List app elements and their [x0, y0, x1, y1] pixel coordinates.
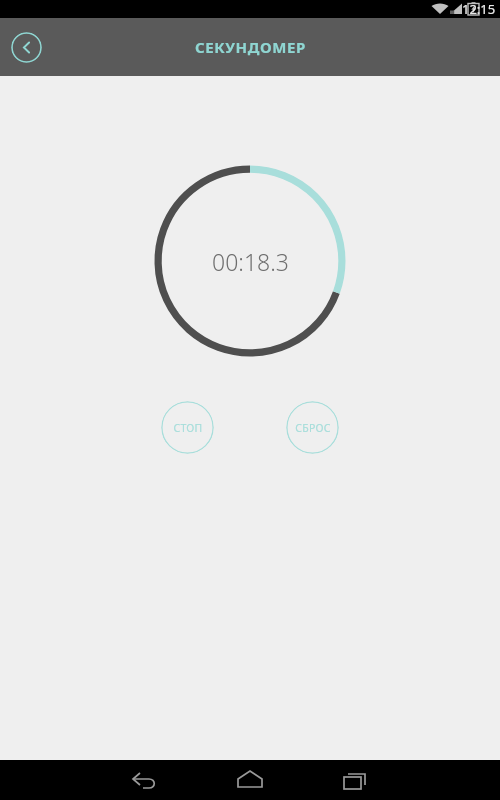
button[interactable]: Home [225, 760, 275, 800]
staticText: СБРОС [295, 421, 331, 435]
button[interactable]: Back [120, 760, 170, 800]
staticText: 00:18.3 [212, 246, 289, 277]
button[interactable]: Recent apps [330, 760, 380, 800]
staticText: 12:15 [462, 0, 496, 18]
staticText: СЕКУНДОМЕР [195, 37, 306, 57]
button[interactable]: СБРОС [286, 401, 339, 454]
button[interactable]: Back [11, 32, 42, 63]
button[interactable]: СТОП [161, 401, 214, 454]
staticText: СТОП [173, 421, 203, 435]
